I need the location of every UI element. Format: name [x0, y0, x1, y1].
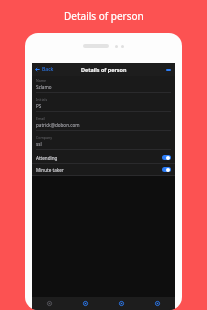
button[interactable]: Settings	[139, 297, 175, 310]
staticText: patrick@dobon.com	[36, 122, 80, 128]
button[interactable]: Company	[32, 133, 175, 152]
staticText: Company	[36, 135, 53, 140]
staticText: Name	[36, 78, 47, 83]
staticText: PS	[36, 103, 42, 109]
button[interactable]: Attending	[32, 152, 175, 163]
staticText: Details of person	[81, 66, 127, 73]
staticText: Details of person	[64, 9, 144, 23]
button[interactable]: Name	[32, 76, 175, 95]
button[interactable]: Minute taker	[32, 164, 175, 175]
staticText: Email	[36, 116, 46, 121]
staticText: Back	[42, 66, 54, 73]
button[interactable]: Back	[32, 63, 57, 76]
staticText: Szlamo	[36, 84, 52, 90]
button[interactable]: People	[67, 297, 103, 310]
staticText: Initials	[36, 97, 48, 102]
button[interactable]: Email	[32, 114, 175, 133]
button[interactable]: Initials	[32, 95, 175, 114]
staticText: ssl	[36, 141, 42, 147]
button[interactable]: Home	[32, 297, 67, 310]
staticText: Attending	[36, 155, 162, 161]
button[interactable]: More options	[162, 63, 175, 76]
staticText: Minute taker	[36, 167, 162, 173]
button[interactable]: Messages	[103, 297, 139, 310]
